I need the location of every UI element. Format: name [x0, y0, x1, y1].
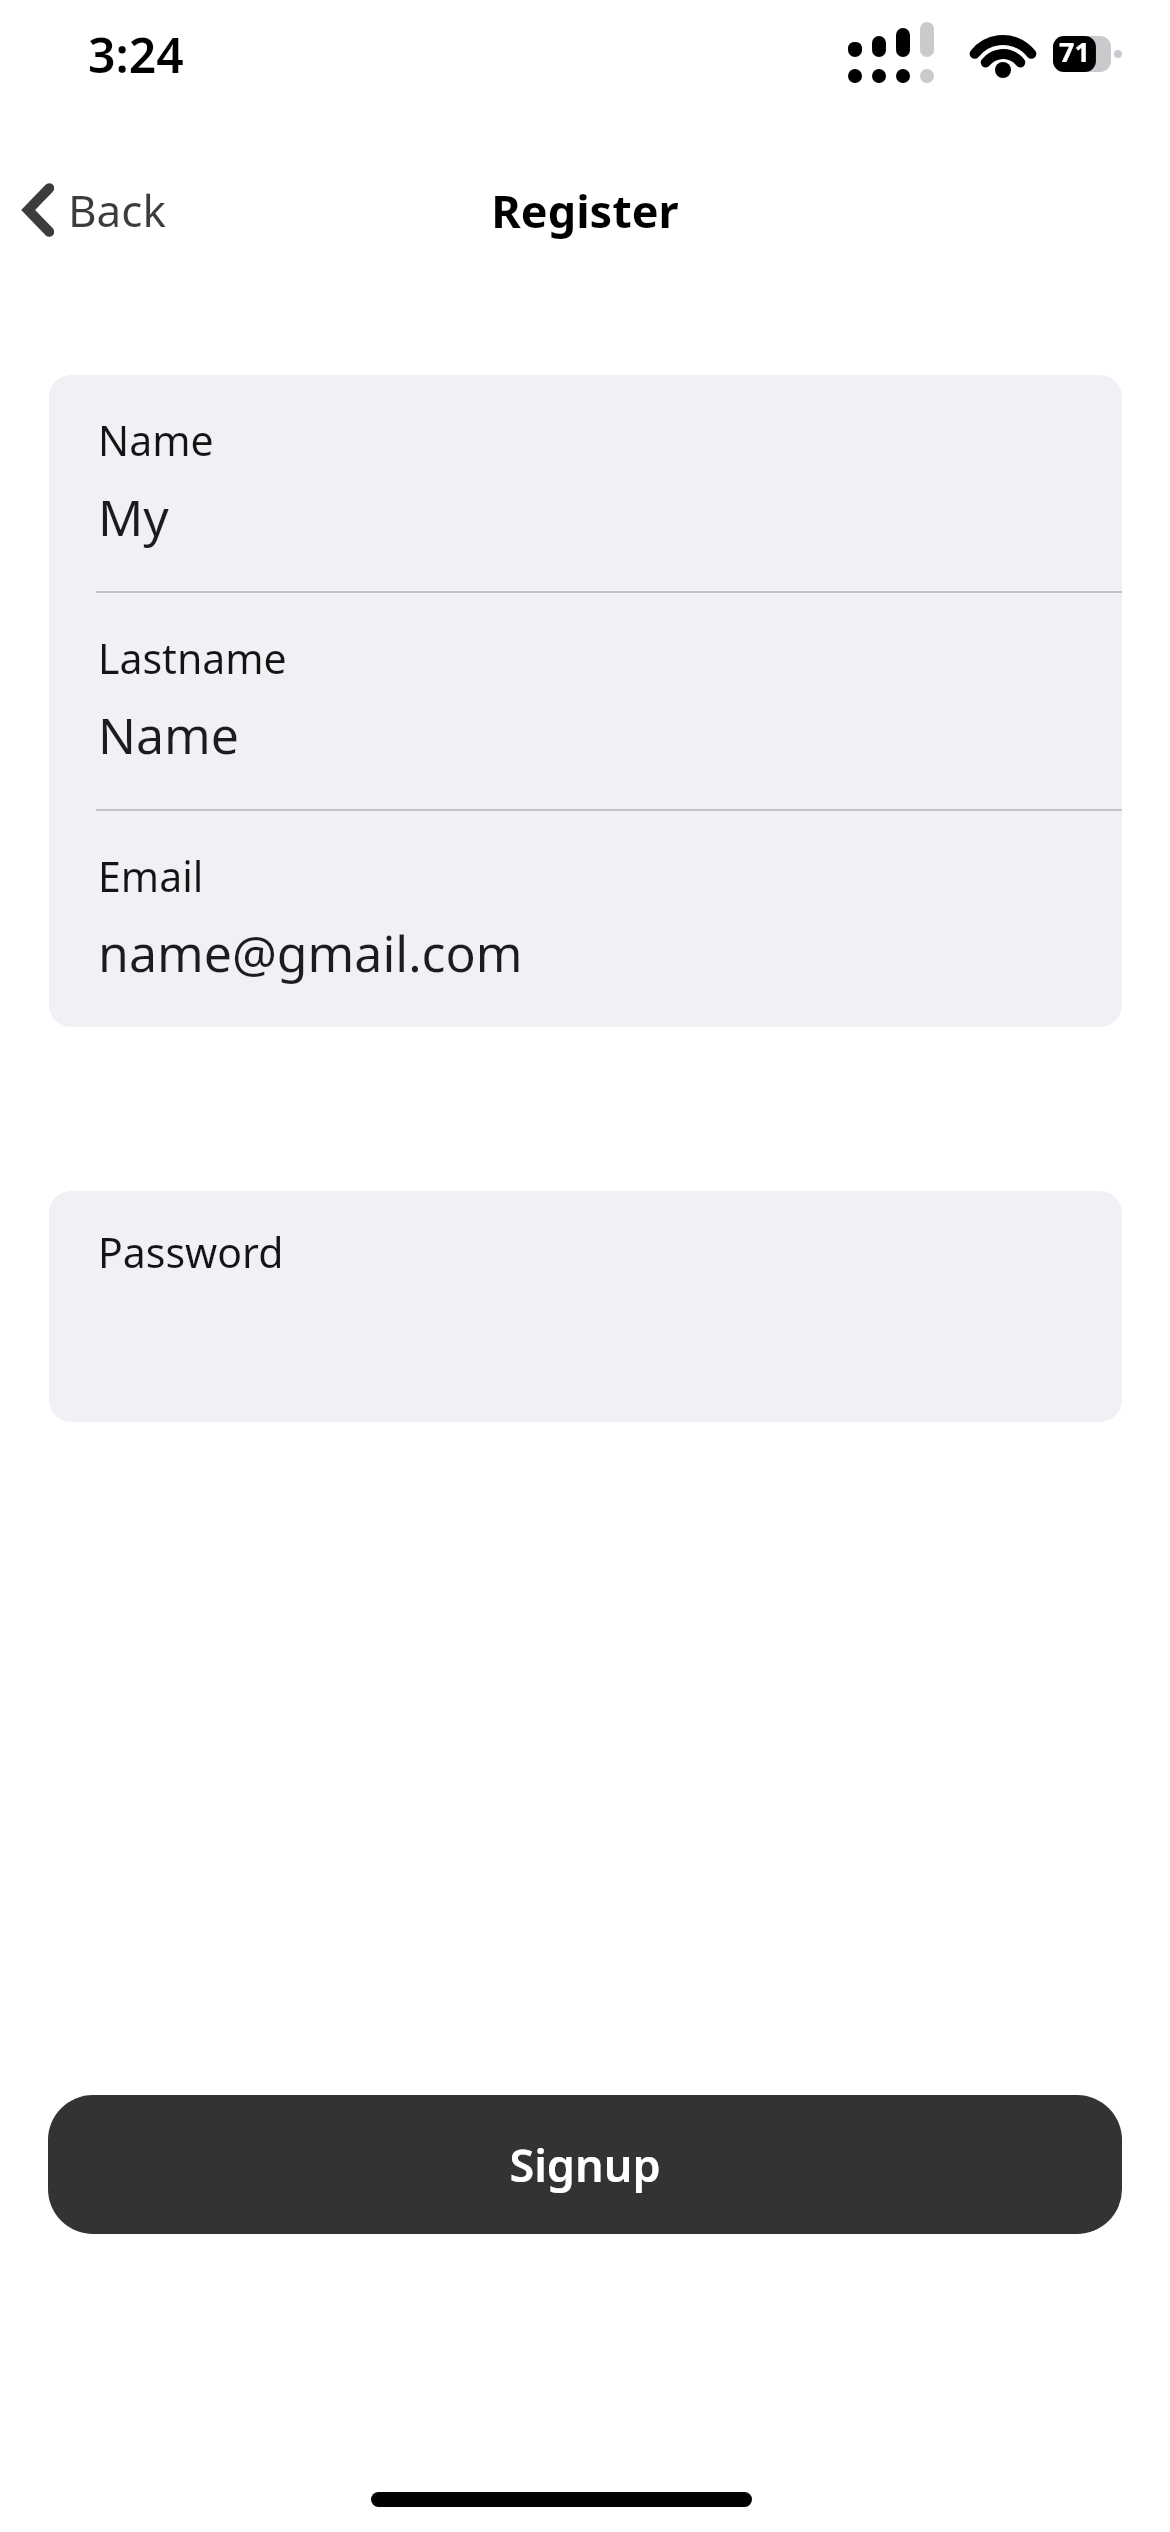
staticText: Lastname	[98, 630, 287, 686]
button[interactable]: Back	[10, 172, 132, 248]
staticText: Signup	[509, 2134, 661, 2195]
staticText: Back	[68, 180, 166, 240]
staticText: Name	[98, 412, 214, 468]
staticText: Name	[98, 701, 239, 769]
staticText: 3:24	[88, 22, 184, 87]
button[interactable]: Password	[49, 1191, 1122, 1422]
staticText: Password	[98, 1224, 284, 1280]
staticText: Email	[98, 848, 204, 904]
button[interactable]: Signup	[48, 2095, 1122, 2234]
button[interactable]: Name	[49, 375, 1122, 591]
button[interactable]: Email	[49, 811, 1122, 1027]
staticText: Register	[491, 180, 679, 241]
button[interactable]: Lastname	[49, 593, 1122, 809]
staticText: My	[98, 483, 169, 551]
staticText: name@gmail.com	[98, 919, 523, 987]
staticText: 71	[1059, 33, 1090, 70]
